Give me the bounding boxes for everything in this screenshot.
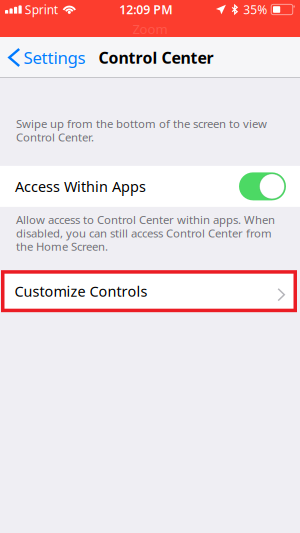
staticText: Sprint: [25, 1, 58, 18]
button[interactable]: Settings: [0, 37, 98, 78]
staticText: 35%: [243, 1, 267, 18]
staticText: Zoom: [132, 20, 167, 38]
staticText: 12:09 PM: [119, 1, 172, 18]
button[interactable]: Customize Controls: [0, 270, 300, 312]
staticText: Settings: [23, 46, 85, 69]
button[interactable]: Access Within Apps: [0, 166, 300, 207]
staticText: Customize Controls: [14, 281, 147, 301]
staticText: Access Within Apps: [15, 177, 146, 196]
staticText: Allow access to Control Center within ap…: [16, 212, 275, 254]
staticText: Swipe up from the bottom of the screen t…: [16, 116, 267, 145]
staticText: Control Center: [98, 47, 213, 68]
